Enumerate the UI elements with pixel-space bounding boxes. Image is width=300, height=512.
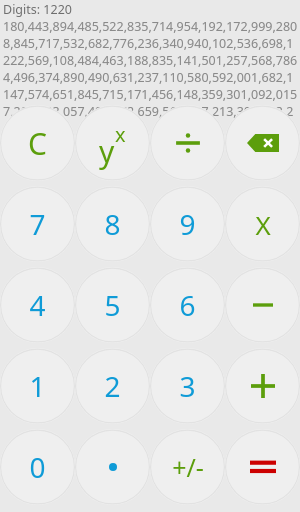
button[interactable]: 8 xyxy=(75,186,150,262)
button[interactable] xyxy=(225,429,300,505)
button[interactable]: X xyxy=(225,186,300,262)
staticText: 222,569,108,484,463,188,835,141,501,257,… xyxy=(3,52,298,69)
button[interactable] xyxy=(225,348,300,424)
button[interactable]: 0 xyxy=(0,429,75,505)
staticText: x xyxy=(115,121,126,148)
staticText: 2 xyxy=(104,367,121,405)
button[interactable]: +/- xyxy=(150,429,225,505)
button[interactable]: y xyxy=(75,105,150,181)
staticText: 7,205,623,057,495,772,659,564,027,213,30… xyxy=(3,103,298,120)
button[interactable]: 2 xyxy=(75,348,150,424)
staticText: 5 xyxy=(104,286,121,324)
button[interactable]: 3 xyxy=(150,348,225,424)
button[interactable]: C xyxy=(0,105,75,181)
staticText: y xyxy=(99,131,115,172)
staticText: 4,496,374,890,490,631,237,110,580,592,00… xyxy=(3,69,298,86)
staticText: 8 xyxy=(104,205,121,243)
staticText: 1 xyxy=(29,367,46,405)
staticText: 8,845,717,532,682,776,236,340,940,102,53… xyxy=(3,35,298,52)
button[interactable]: 6 xyxy=(150,267,225,343)
button[interactable] xyxy=(75,429,150,505)
staticText: 9 xyxy=(179,205,196,243)
button[interactable]: Backspace xyxy=(225,105,300,181)
button[interactable]: 7 xyxy=(0,186,75,262)
staticText: Digits: 1220 xyxy=(3,1,72,18)
staticText: 180,443,894,485,522,835,714,954,192,172,… xyxy=(3,18,298,35)
button[interactable] xyxy=(225,267,300,343)
staticText: 147,574,651,845,715,171,456,148,359,301,… xyxy=(3,86,298,103)
staticText: 6 xyxy=(179,286,196,324)
staticText: 0 xyxy=(29,448,46,486)
staticText: C xyxy=(28,123,47,164)
staticText: 4 xyxy=(29,286,46,324)
button[interactable]: 1 xyxy=(0,348,75,424)
staticText: X xyxy=(255,207,271,242)
staticText: +/- xyxy=(172,450,204,484)
button[interactable]: 5 xyxy=(75,267,150,343)
staticText: 7 xyxy=(29,205,46,243)
button[interactable] xyxy=(150,105,225,181)
button[interactable]: 4 xyxy=(0,267,75,343)
staticText: 3 xyxy=(179,367,196,405)
button[interactable]: 9 xyxy=(150,186,225,262)
